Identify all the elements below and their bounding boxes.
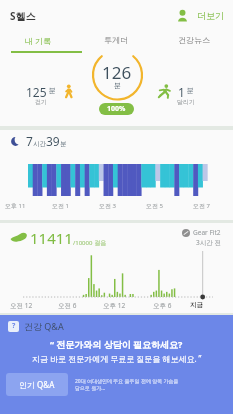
staticText: 분 xyxy=(185,86,194,96)
staticText: 오전 5 xyxy=(146,202,163,210)
staticText: 분 xyxy=(60,140,67,148)
staticText: 20대 여대생인데 주요 월주일 전에 양쪽 가슴을 xyxy=(75,378,179,385)
staticText: 걸음 xyxy=(93,239,107,247)
staticText: 더보기 xyxy=(197,10,224,21)
button[interactable]: 인기 Q&A xyxy=(6,373,68,396)
staticText: 3시간 전 xyxy=(196,238,221,247)
staticText: 분 xyxy=(114,81,121,90)
button[interactable]: 126 xyxy=(0,53,233,126)
staticText: 11411 xyxy=(30,228,73,248)
button[interactable]: Profile xyxy=(176,9,189,22)
staticText: 내 기록 xyxy=(25,35,52,46)
staticText: 39 xyxy=(46,133,60,149)
staticText: 담으로 뭔가... xyxy=(75,385,106,392)
staticText: 7 xyxy=(26,133,33,149)
button[interactable]: 100% xyxy=(99,103,134,115)
staticText: 분 xyxy=(47,86,56,96)
staticText: S헬스 xyxy=(10,9,36,23)
staticText: 126 xyxy=(102,61,132,84)
button[interactable]: ? xyxy=(0,315,233,414)
staticText: 지금 바로 전문가에게 무료로 질문을 해보세요. ” xyxy=(32,353,202,364)
staticText: 오전 12 xyxy=(10,301,33,310)
staticText: 오전 7 xyxy=(193,202,210,210)
staticText: 오후 11 xyxy=(5,202,26,210)
staticText: Gear Fit2 xyxy=(193,228,221,237)
staticText: 125 xyxy=(26,84,47,100)
staticText: 건강 Q&A xyxy=(24,320,64,332)
button[interactable]: 11411 xyxy=(0,223,233,313)
staticText: 달리기 xyxy=(177,98,195,106)
staticText: 오후 6 xyxy=(153,301,172,310)
button[interactable]: 내 기록 xyxy=(0,31,77,53)
staticText: 시간 xyxy=(33,140,46,148)
button[interactable]: 건강뉴스 xyxy=(155,31,233,53)
staticText: ? xyxy=(12,321,16,331)
button[interactable]: 투게더 xyxy=(77,31,155,53)
staticText: 오전 6 xyxy=(58,301,77,310)
staticText: 오후 12 xyxy=(103,301,126,310)
staticText: 1 xyxy=(178,84,185,100)
staticText: 투게더 xyxy=(104,35,128,45)
staticText: /10000 xyxy=(73,239,93,247)
staticText: “ 전문가와의 상담이 필요하세요? xyxy=(50,338,183,350)
staticText: 오전 1 xyxy=(52,202,69,210)
button[interactable]: 7 xyxy=(0,130,233,220)
button[interactable]: 더보기 xyxy=(197,10,224,21)
staticText: 걷기 xyxy=(35,98,47,106)
staticText: 인기 Q&A xyxy=(19,379,55,390)
staticText: 오전 3 xyxy=(99,202,116,210)
staticText: 건강뉴스 xyxy=(178,35,210,45)
staticText: 100% xyxy=(107,104,126,114)
staticText: 지금 xyxy=(190,301,203,309)
